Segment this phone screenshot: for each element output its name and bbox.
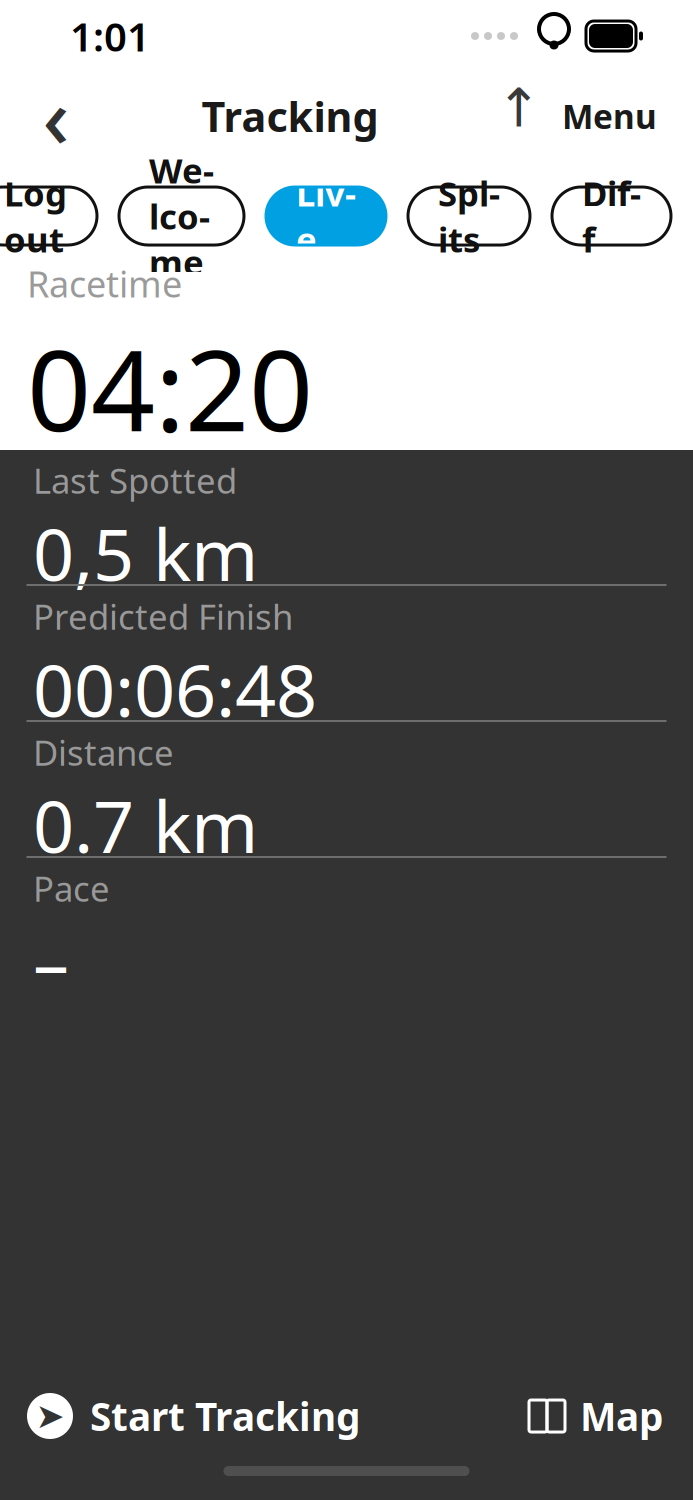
staticText: Live [296, 170, 356, 262]
button[interactable]: ➤ [20, 1381, 366, 1451]
staticText: ➤ [35, 1396, 64, 1436]
staticText: Start Tracking [90, 1390, 360, 1442]
staticText: ↑ [496, 78, 541, 138]
button[interactable]: Splits [408, 187, 530, 245]
staticText: Splits [438, 170, 500, 262]
staticText: Pace [33, 865, 110, 911]
staticText: 1:01 [70, 9, 150, 62]
staticText: ‹ [42, 61, 69, 171]
button[interactable]: Log out [0, 187, 97, 245]
staticText: 0,5 km [33, 505, 258, 601]
button[interactable]: Share [488, 76, 550, 156]
button[interactable]: Map [522, 1381, 669, 1451]
staticText: Last Spotted [33, 457, 237, 503]
staticText: Welcome [149, 147, 214, 285]
button[interactable]: Diff [552, 187, 671, 245]
staticText: Distance [33, 729, 174, 775]
staticText: Log out [4, 170, 67, 262]
staticText: – [33, 913, 69, 1009]
staticText: Predicted Finish [33, 593, 293, 639]
button[interactable]: Live [266, 187, 386, 245]
staticText: Tracking [201, 89, 378, 143]
staticText: Map [580, 1390, 663, 1442]
button[interactable]: Welcome [119, 187, 244, 245]
staticText: 0.7 km [33, 777, 258, 873]
staticText: 00:06:48 [33, 641, 317, 737]
staticText: 04:20 [27, 313, 313, 462]
button[interactable]: Back [20, 76, 92, 156]
button[interactable]: Menu [550, 76, 669, 156]
staticText: Menu [562, 94, 657, 138]
staticText: Diff [582, 170, 641, 262]
staticText: Racetime [27, 260, 182, 307]
